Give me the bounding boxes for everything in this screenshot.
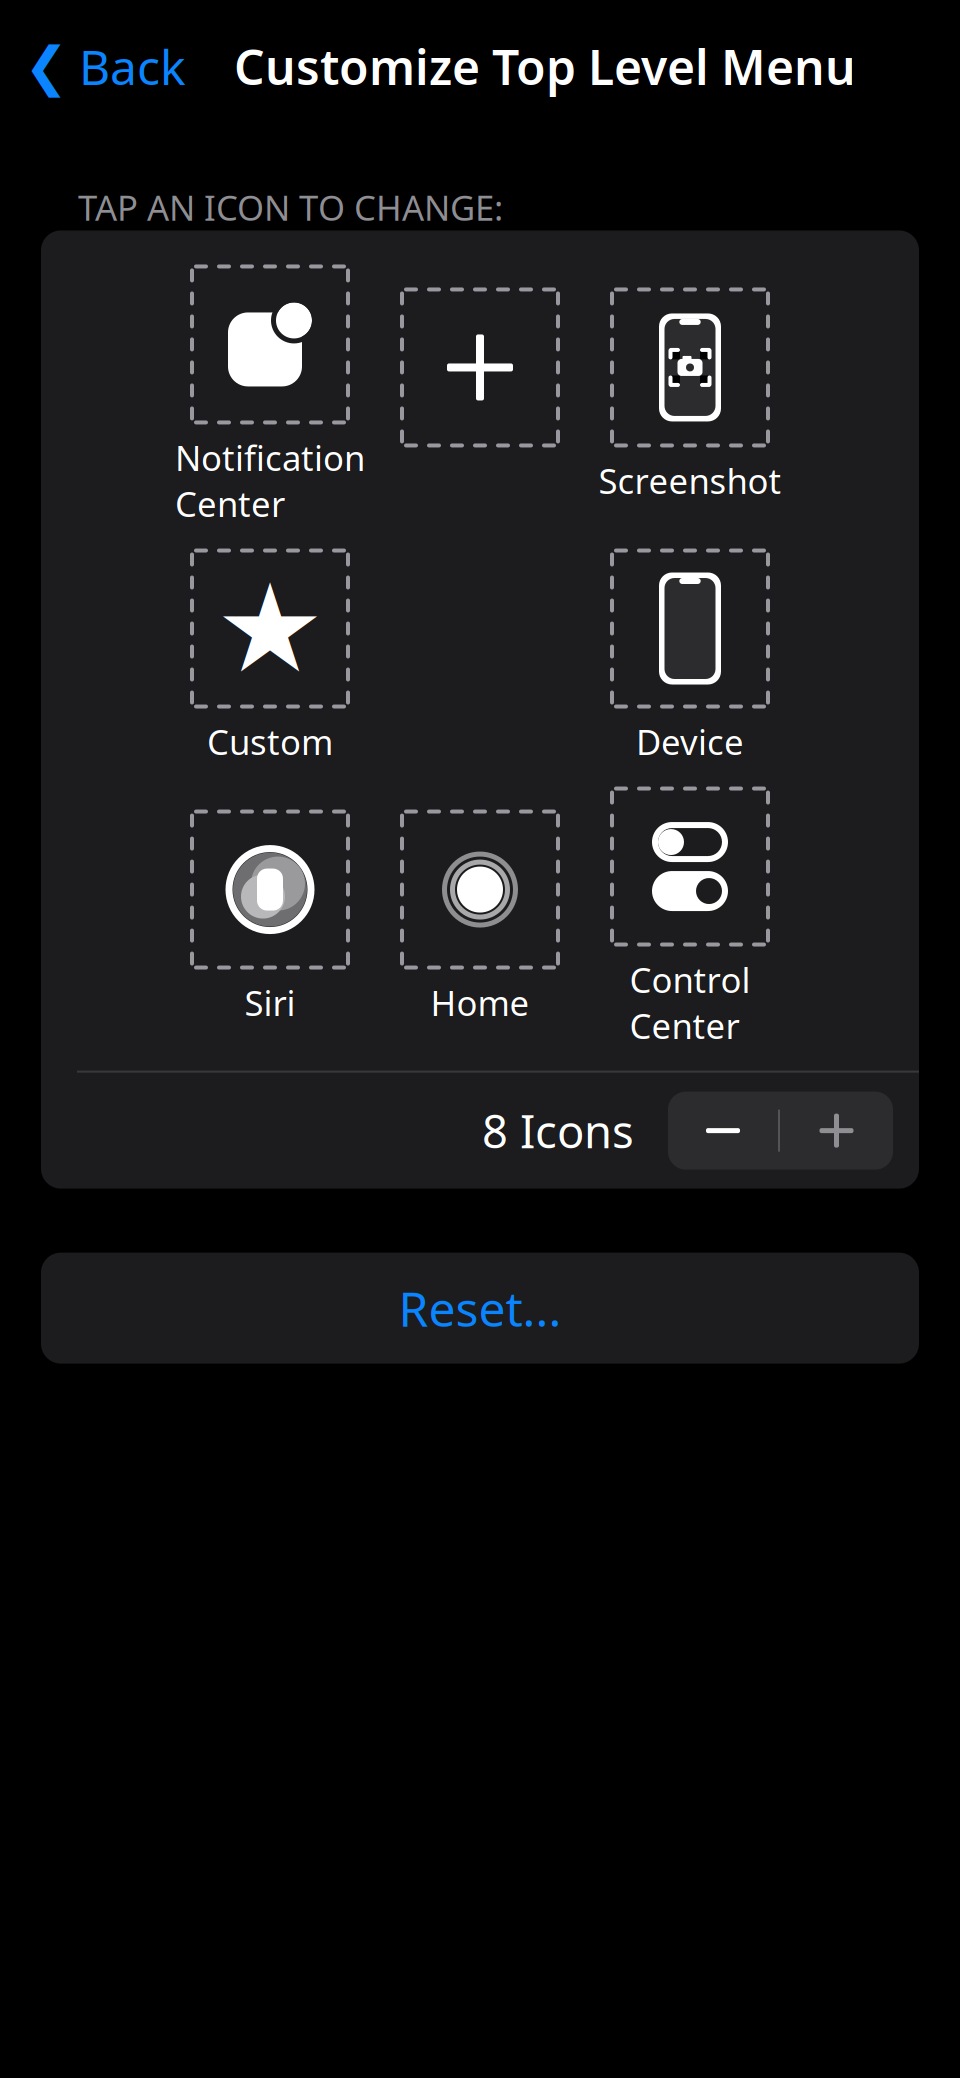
staticText: Reset... [398, 1276, 561, 1340]
button[interactable]: Control Center [585, 786, 795, 1049]
button[interactable]: Screenshot [585, 287, 795, 503]
button[interactable]: Siri [165, 810, 375, 1026]
button[interactable]: Reset... [41, 1253, 919, 1364]
staticText: Control Center [629, 956, 750, 1049]
button[interactable]: Add icon [375, 287, 585, 503]
staticText: Custom [207, 718, 333, 764]
staticText: Home [430, 980, 529, 1026]
staticText: Notification Center [175, 434, 365, 526]
staticText: Customize Top Level Menu [234, 34, 856, 98]
staticText: ★ [215, 559, 325, 698]
button[interactable]: Home [375, 810, 585, 1026]
staticText: Screenshot [598, 457, 781, 503]
staticText: Device [636, 718, 744, 764]
button[interactable]: Decrease icon count [668, 1092, 778, 1170]
button[interactable]: ❮ [0, 26, 186, 106]
button[interactable]: Increase icon count [780, 1092, 893, 1170]
button[interactable]: Notification Center [165, 264, 375, 526]
staticText: Siri [244, 980, 295, 1026]
staticText: ❮ [24, 36, 69, 97]
button[interactable]: Device [585, 548, 795, 764]
button[interactable]: Custom [165, 548, 375, 764]
staticText: Back [79, 34, 186, 98]
staticText: 8 Icons [482, 1100, 634, 1161]
staticText: TAP AN ICON TO CHANGE: [78, 184, 503, 230]
